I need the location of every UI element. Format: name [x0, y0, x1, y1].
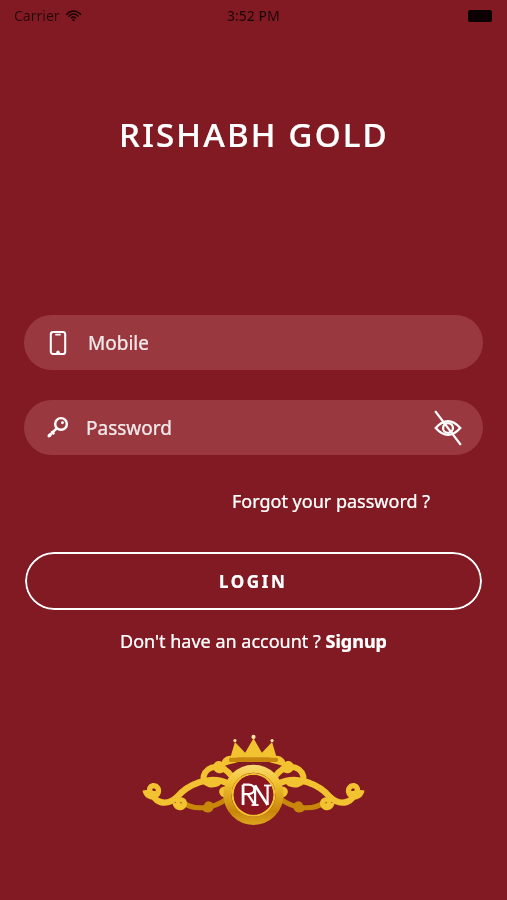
staticText: Don't have an account ? Signup	[120, 629, 387, 654]
staticText: Forgot your password ?	[232, 489, 431, 514]
staticText: LOGIN	[219, 570, 288, 593]
staticText: Password	[86, 415, 172, 441]
button[interactable]: Don't have an account ? Signup	[114, 626, 393, 657]
button[interactable]: Password	[24, 400, 483, 455]
button[interactable]: Forgot your password ?	[228, 485, 435, 518]
staticText: Carrier	[14, 6, 60, 25]
staticText: RISHABH GOLD	[119, 112, 389, 157]
button[interactable]: Mobile	[24, 315, 483, 370]
staticText: 3:52 PM	[227, 6, 280, 25]
button[interactable]: LOGIN	[25, 552, 482, 610]
button[interactable]: Show password	[431, 411, 465, 445]
staticText: Mobile	[88, 330, 149, 356]
